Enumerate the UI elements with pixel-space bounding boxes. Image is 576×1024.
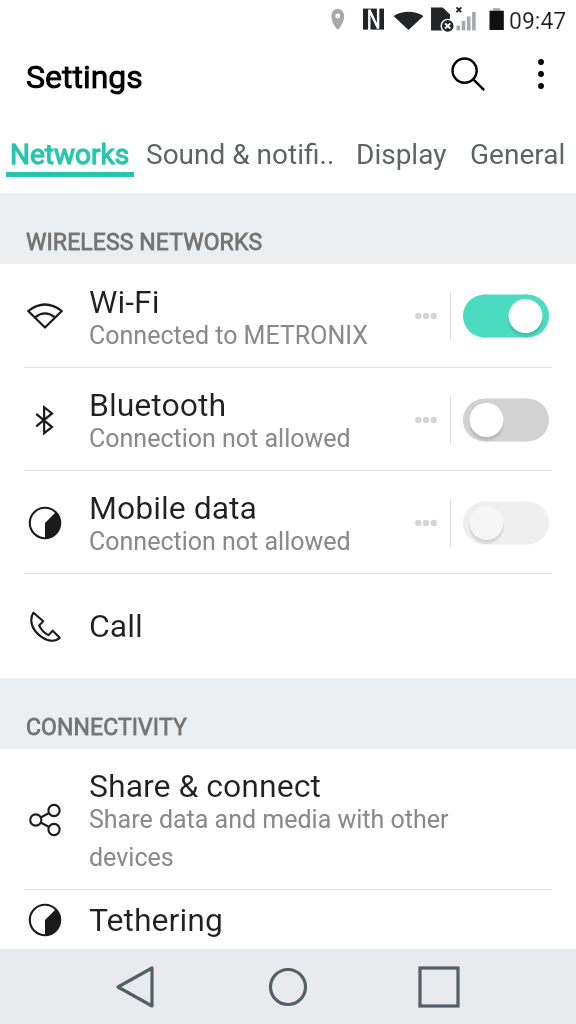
button[interactable]: Mobile data [0,471,576,574]
staticText: Wi-Fi [89,283,160,321]
staticText: Connection not allowed [89,527,414,556]
staticText: General [470,138,566,171]
staticText: Networks [10,138,130,171]
staticText: Mobile data [89,489,257,527]
staticText: Connected to METRONIX [89,321,414,350]
button[interactable]: Display [346,120,456,193]
staticText: 09:47 [509,8,567,35]
staticText: Bluetooth [89,386,227,424]
button[interactable]: Networks [6,120,134,193]
staticText: Connection not allowed [89,424,414,453]
button[interactable]: More options [513,46,569,102]
staticText: CONNECTIVITY [26,714,187,741]
button[interactable]: Home [240,949,336,1024]
staticText: Share data and media with other devices [89,805,461,872]
button[interactable]: Toggle [463,495,549,551]
button[interactable]: Share & connect [0,749,576,890]
staticText: Settings [26,58,143,96]
button[interactable]: Tethering [0,890,576,949]
staticText: Tethering [89,901,223,939]
button[interactable]: Back [87,949,183,1024]
button[interactable]: Call [0,574,576,678]
staticText: Share & connect [89,767,321,805]
staticText: Display [356,138,447,171]
staticText: Call [89,607,143,645]
button[interactable]: General [460,120,576,193]
button[interactable]: Sound & notifi.. [140,120,340,193]
staticText: WIRELESS NETWORKS [26,229,263,256]
staticText: Sound & notifi.. [146,138,335,171]
button[interactable]: Toggle [463,392,549,448]
button[interactable]: Wi-Fi [0,264,576,368]
button[interactable]: Search [440,46,496,102]
button[interactable]: Toggle [463,288,549,344]
button[interactable]: Recent apps [391,949,487,1024]
button[interactable]: Bluetooth [0,368,576,471]
